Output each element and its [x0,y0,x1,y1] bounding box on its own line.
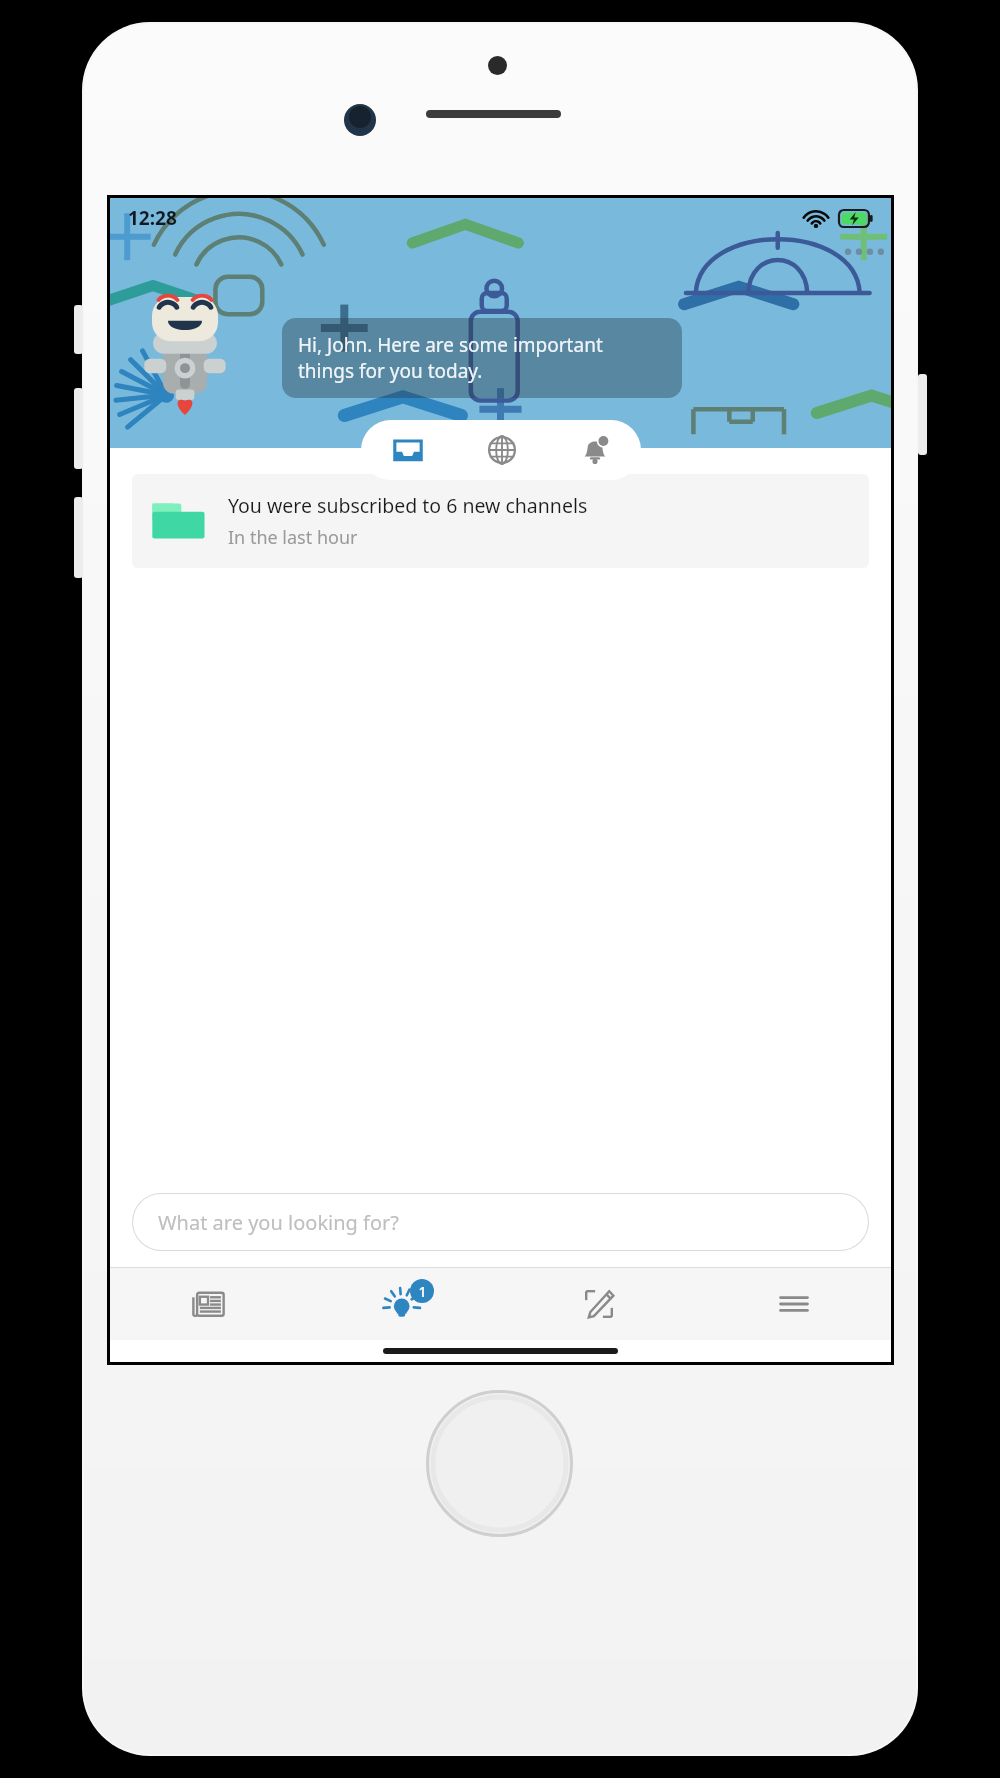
staticText: You were subscribed to 6 new channels [228,492,588,519]
button[interactable]: Notifications [548,420,641,480]
staticText: 12:28 [128,205,177,231]
button[interactable]: Insights [306,1268,501,1340]
button[interactable]: Discover [455,420,548,480]
button[interactable]: News [110,1268,306,1340]
staticText: What are you looking for? [158,1209,399,1236]
staticText: In the last hour [228,525,358,550]
button[interactable]: Inbox [361,420,455,480]
button[interactable]: You were subscribed to 6 new channels [132,474,869,568]
button[interactable]: Home [426,1390,573,1537]
button[interactable]: What are you looking for? [132,1193,869,1251]
staticText: 1 [418,1282,427,1301]
staticText: Hi, John. Here are some important things… [298,332,603,384]
button[interactable]: Compose [501,1268,696,1340]
button[interactable]: Menu [696,1268,891,1340]
